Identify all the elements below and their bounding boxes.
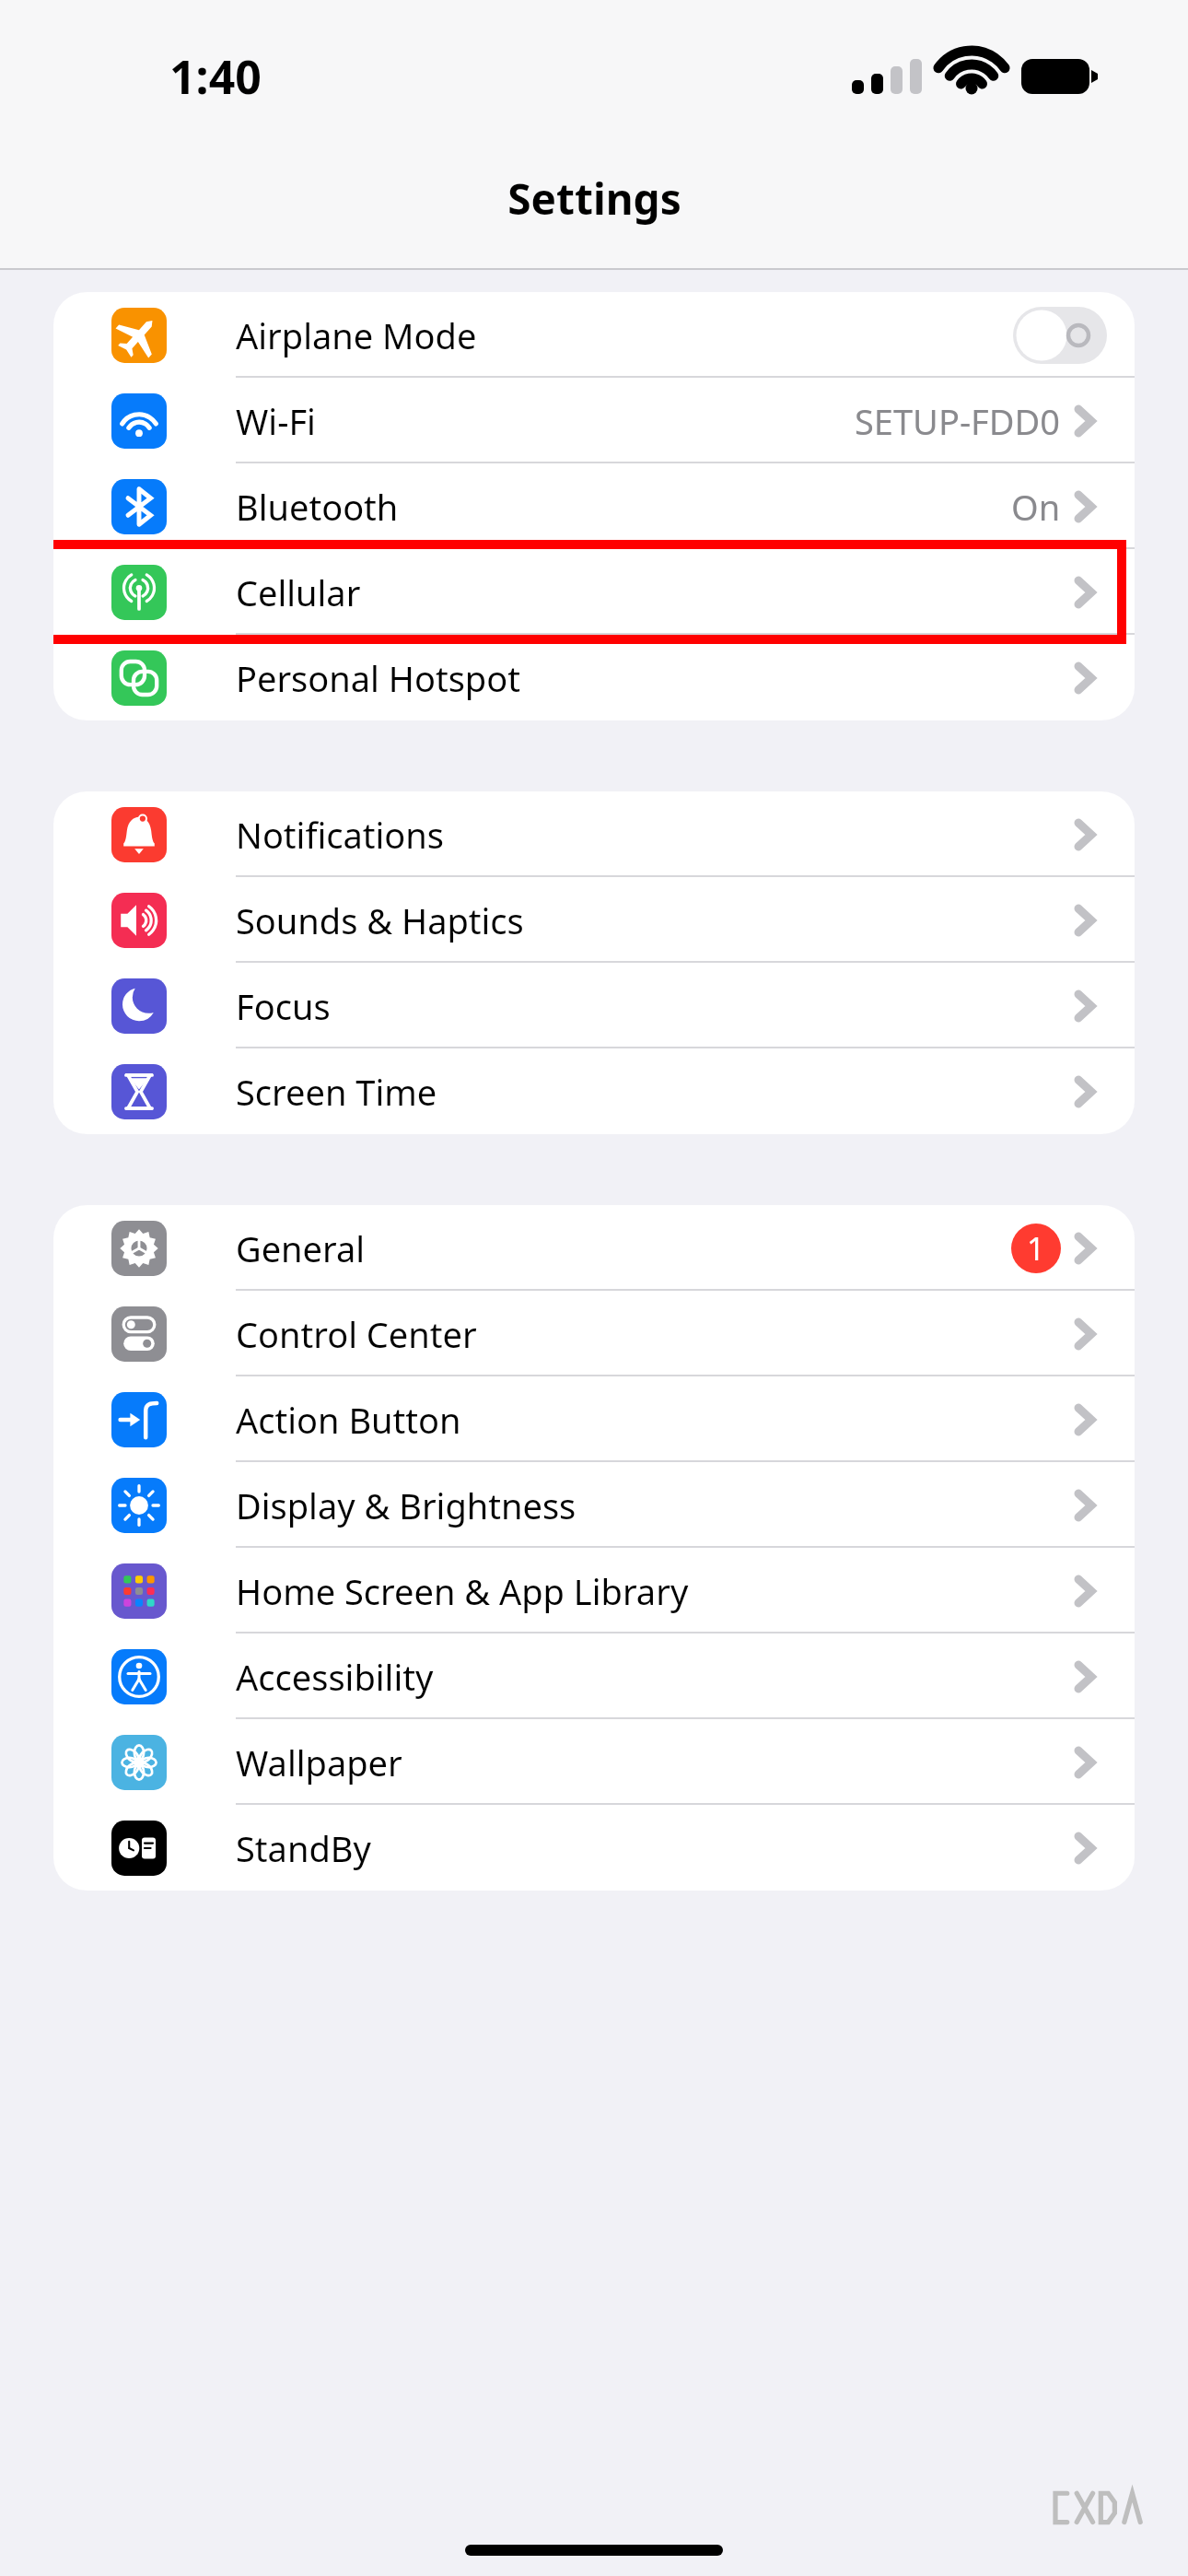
- staticText: Focus: [236, 982, 331, 1030]
- staticText: Cellular: [236, 568, 361, 616]
- button[interactable]: Airplane Mode toggle, off: [1013, 307, 1107, 364]
- staticText: Action Button: [236, 1396, 461, 1444]
- button[interactable]: Wallpaper: [53, 1719, 1135, 1805]
- staticText: Wallpaper: [236, 1739, 402, 1786]
- button[interactable]: Personal Hotspot: [53, 635, 1135, 720]
- staticText: StandBy: [236, 1824, 371, 1872]
- button[interactable]: Wi-Fi: [53, 378, 1135, 463]
- button[interactable]: Display & Brightness: [53, 1462, 1135, 1548]
- button[interactable]: Screen Time: [53, 1048, 1135, 1134]
- staticText: General: [236, 1224, 366, 1272]
- button[interactable]: Bluetooth: [53, 463, 1135, 549]
- button[interactable]: Action Button: [53, 1376, 1135, 1462]
- button[interactable]: Cellular: [53, 549, 1135, 635]
- staticText: Accessibility: [236, 1653, 434, 1701]
- staticText: SETUP-FDD0: [855, 397, 1061, 445]
- staticText: Wi-Fi: [236, 397, 316, 445]
- button[interactable]: Sounds & Haptics: [53, 877, 1135, 963]
- button[interactable]: General: [53, 1205, 1135, 1291]
- staticText: Screen Time: [236, 1068, 437, 1116]
- staticText: On: [1011, 483, 1061, 531]
- button[interactable]: Home Screen & App Library: [53, 1548, 1135, 1633]
- staticText: Home Screen & App Library: [236, 1567, 689, 1615]
- staticText: Settings: [507, 170, 681, 228]
- button[interactable]: Focus: [53, 963, 1135, 1048]
- staticText: 1: [1027, 1227, 1045, 1270]
- staticText: Airplane Mode: [236, 311, 477, 359]
- staticText: Control Center: [236, 1310, 477, 1358]
- button[interactable]: Airplane Mode: [53, 292, 1135, 378]
- button[interactable]: Control Center: [53, 1291, 1135, 1376]
- staticText: Sounds & Haptics: [236, 896, 524, 944]
- staticText: Display & Brightness: [236, 1481, 577, 1529]
- staticText: Bluetooth: [236, 483, 399, 531]
- button[interactable]: Accessibility: [53, 1633, 1135, 1719]
- button[interactable]: StandBy: [53, 1805, 1135, 1891]
- staticText: 1:40: [169, 45, 262, 108]
- button[interactable]: Notifications: [53, 791, 1135, 877]
- staticText: Notifications: [236, 811, 445, 859]
- staticText: Personal Hotspot: [236, 654, 520, 702]
